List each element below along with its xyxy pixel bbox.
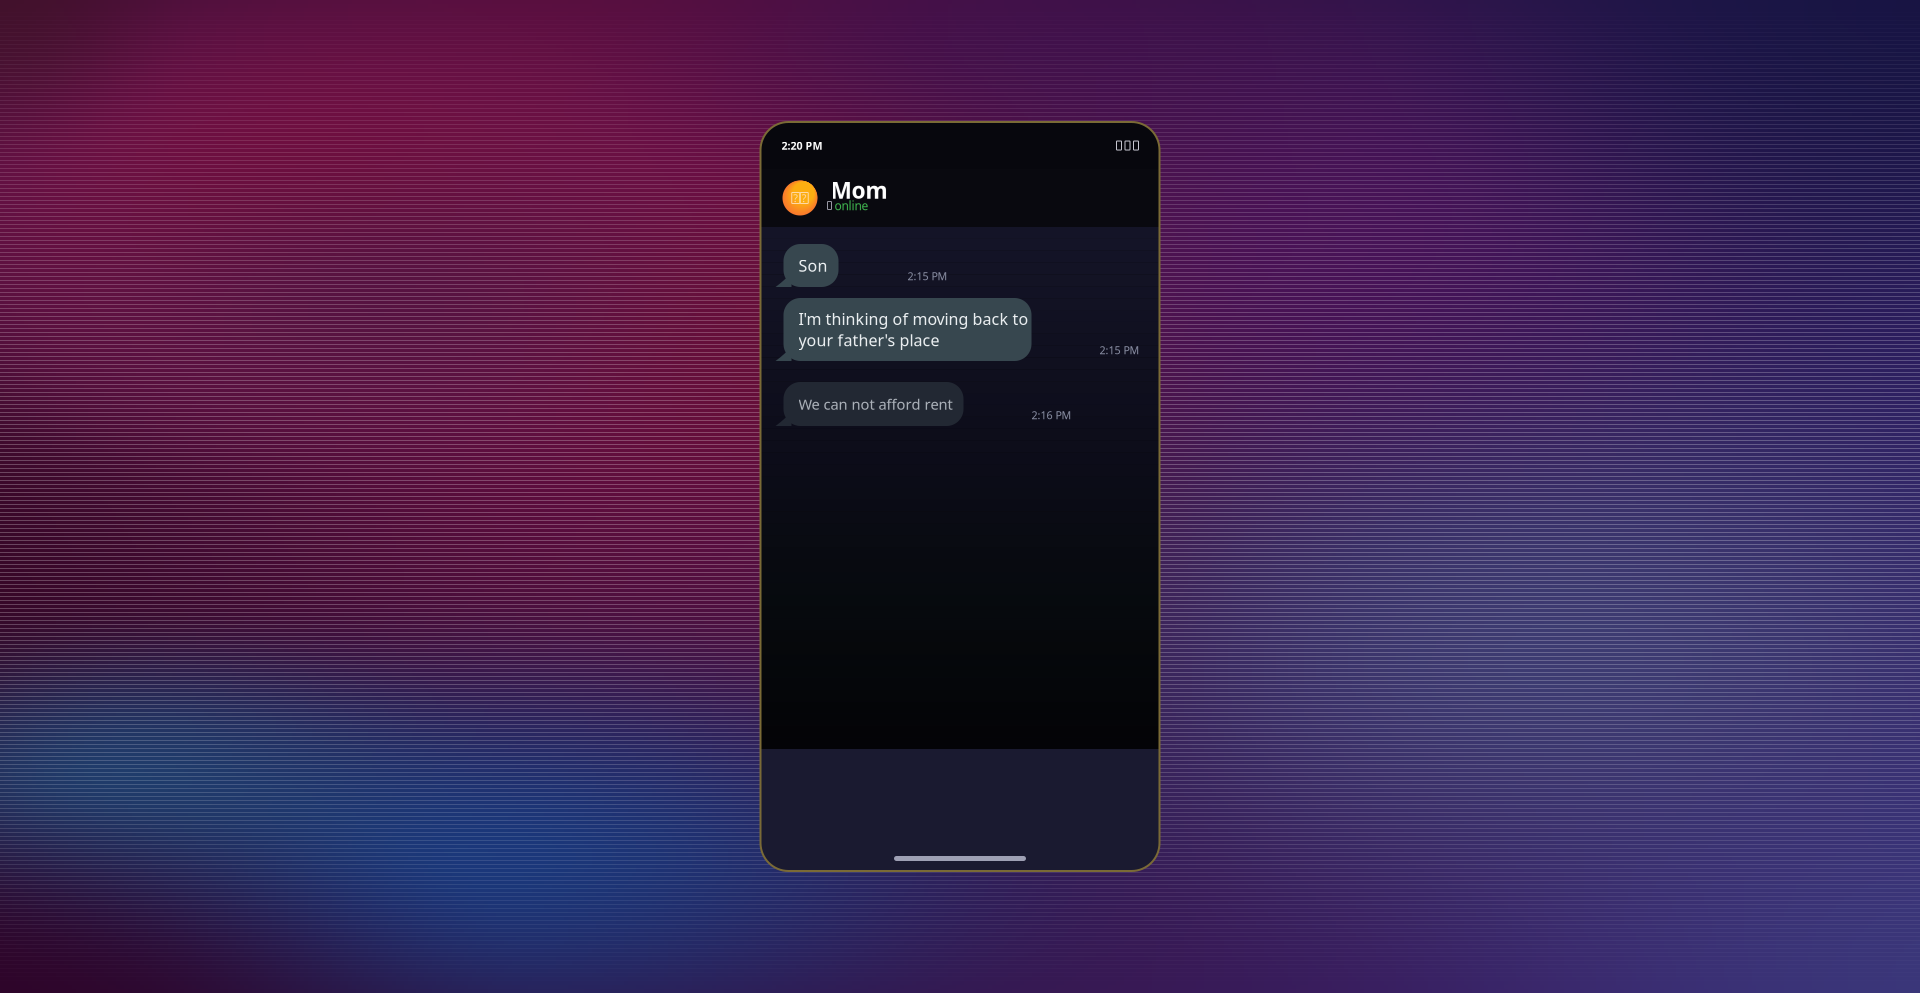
staticText: ? xyxy=(793,191,798,205)
button[interactable]: ? xyxy=(760,169,1159,227)
staticText: Son xyxy=(798,255,827,276)
staticText: ? xyxy=(802,191,807,205)
staticText: I'm thinking of moving back to your fath… xyxy=(798,308,1028,351)
staticText: online xyxy=(834,197,868,213)
staticText: 2:16 PM xyxy=(1031,408,1071,422)
staticText: 2:20 PM xyxy=(781,138,822,153)
staticText: We can not afford rent xyxy=(798,394,952,414)
staticText: 2:15 PM xyxy=(1099,343,1139,357)
staticText: Mom xyxy=(830,175,887,205)
staticText: 2:15 PM xyxy=(907,269,947,283)
